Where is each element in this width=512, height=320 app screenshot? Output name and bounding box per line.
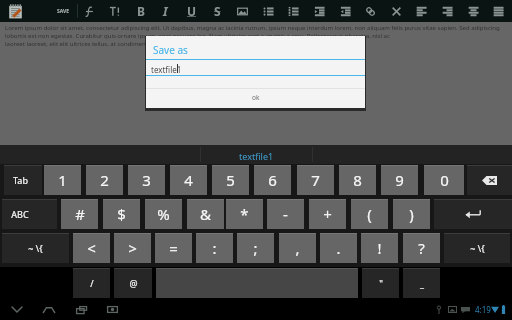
button[interactable]: >	[114, 233, 151, 263]
button[interactable]: Insert image	[230, 0, 255, 22]
staticText: 9	[395, 170, 404, 190]
button[interactable]: Recent apps	[69, 299, 93, 320]
button[interactable]: _	[403, 268, 440, 298]
staticText: ?	[418, 238, 425, 258]
staticText: _	[420, 277, 424, 289]
button[interactable]: SAVE	[50, 0, 77, 22]
staticText: Tab	[13, 174, 28, 186]
staticText: 0	[440, 170, 449, 190]
button[interactable]: Enter	[434, 199, 512, 229]
button[interactable]: *	[226, 199, 263, 229]
button[interactable]: =	[155, 233, 192, 263]
staticText: $	[117, 204, 126, 224]
button[interactable]: Font	[77, 0, 102, 22]
staticText: U	[187, 3, 197, 19]
button[interactable]: (	[351, 199, 388, 229]
button[interactable]: @	[114, 268, 152, 298]
staticText: lobortis est non egestas. Curabitur quis…	[5, 32, 390, 40]
button[interactable]: ;	[237, 233, 274, 263]
button[interactable]: 3	[128, 165, 165, 195]
button[interactable]: Tab	[4, 165, 42, 195]
button[interactable]: /	[73, 268, 110, 298]
button[interactable]: Space	[156, 268, 358, 298]
button[interactable]: 1	[44, 165, 81, 195]
button[interactable]: ABC	[2, 199, 57, 229]
button[interactable]: Notes app	[2, 0, 28, 22]
staticText: @	[129, 277, 138, 289]
button[interactable]: Align right	[435, 0, 460, 22]
staticText: ,	[295, 238, 300, 258]
button[interactable]: Screenshot	[100, 299, 124, 320]
button[interactable]: &	[187, 199, 224, 229]
button[interactable]: "	[362, 268, 399, 298]
button[interactable]: <	[73, 233, 110, 263]
button[interactable]: Home	[37, 299, 61, 320]
staticText: SAVE	[57, 8, 70, 15]
button[interactable]: Align left	[409, 0, 434, 22]
button[interactable]: :	[196, 233, 233, 263]
button[interactable]: 0	[424, 165, 464, 195]
button[interactable]: 2	[86, 165, 123, 195]
button[interactable]: ~ \{	[2, 233, 69, 263]
button[interactable]: Back	[5, 299, 29, 320]
button[interactable]: 5	[212, 165, 249, 195]
button[interactable]: .	[320, 233, 357, 263]
staticText: ~ \{	[470, 242, 485, 254]
button[interactable]: -	[267, 199, 304, 229]
staticText: :	[212, 238, 217, 258]
staticText: &	[200, 204, 211, 224]
button[interactable]: Text size	[102, 0, 127, 22]
staticText: "	[379, 277, 383, 289]
staticText: B	[137, 3, 145, 19]
staticText: 8	[353, 170, 362, 190]
button[interactable]: ,	[279, 233, 316, 263]
button[interactable]: Bullet list	[256, 0, 281, 22]
button[interactable]: Justify	[486, 0, 511, 22]
button[interactable]: %	[145, 199, 182, 229]
staticText: 7	[311, 170, 320, 190]
button[interactable]: !	[361, 233, 398, 263]
staticText: ;	[253, 238, 258, 258]
staticText: )	[409, 204, 414, 224]
button[interactable]: 9	[381, 165, 418, 195]
button[interactable]: Increase indent	[307, 0, 332, 22]
button[interactable]: Clear formatting	[384, 0, 409, 22]
staticText: Lorem ipsum dolor sit amet, consectetur …	[5, 24, 500, 32]
staticText: S	[214, 3, 221, 19]
button[interactable]: Underline	[179, 0, 204, 22]
button[interactable]: Bold	[128, 0, 153, 22]
button[interactable]: $	[103, 199, 140, 229]
button[interactable]: Backspace	[467, 165, 512, 195]
button[interactable]: ~ \{	[444, 233, 510, 263]
staticText: I	[163, 3, 168, 19]
staticText: laoreet laoreet, elit elit ultrices tell…	[5, 40, 331, 48]
staticText: 6	[268, 170, 277, 190]
staticText: +	[323, 204, 332, 224]
button[interactable]: ok	[146, 89, 365, 108]
staticText: textfile1	[239, 150, 274, 162]
button[interactable]: Numbered list	[281, 0, 306, 22]
button[interactable]: Insert link	[358, 0, 383, 22]
button[interactable]: Decrease indent	[333, 0, 358, 22]
button[interactable]: Align center	[461, 0, 486, 22]
button[interactable]: textfile1	[201, 145, 312, 164]
staticText: !	[377, 238, 382, 258]
staticText: ~ \{	[28, 242, 43, 254]
staticText: .	[336, 238, 341, 258]
staticText: #	[75, 204, 85, 224]
staticText: >	[128, 238, 137, 258]
button[interactable]: Italic	[153, 0, 178, 22]
staticText: <	[87, 238, 96, 258]
button[interactable]: ?	[403, 233, 440, 263]
button[interactable]: 7	[297, 165, 334, 195]
button[interactable]: )	[393, 199, 430, 229]
button[interactable]: #	[61, 199, 98, 229]
button[interactable]: 6	[254, 165, 291, 195]
staticText: 4	[184, 170, 193, 190]
button[interactable]: +	[309, 199, 346, 229]
staticText: -	[283, 204, 288, 224]
button[interactable]: 4	[170, 165, 207, 195]
staticText: 3	[142, 170, 151, 190]
button[interactable]: 8	[339, 165, 376, 195]
button[interactable]: Strikethrough	[205, 0, 230, 22]
